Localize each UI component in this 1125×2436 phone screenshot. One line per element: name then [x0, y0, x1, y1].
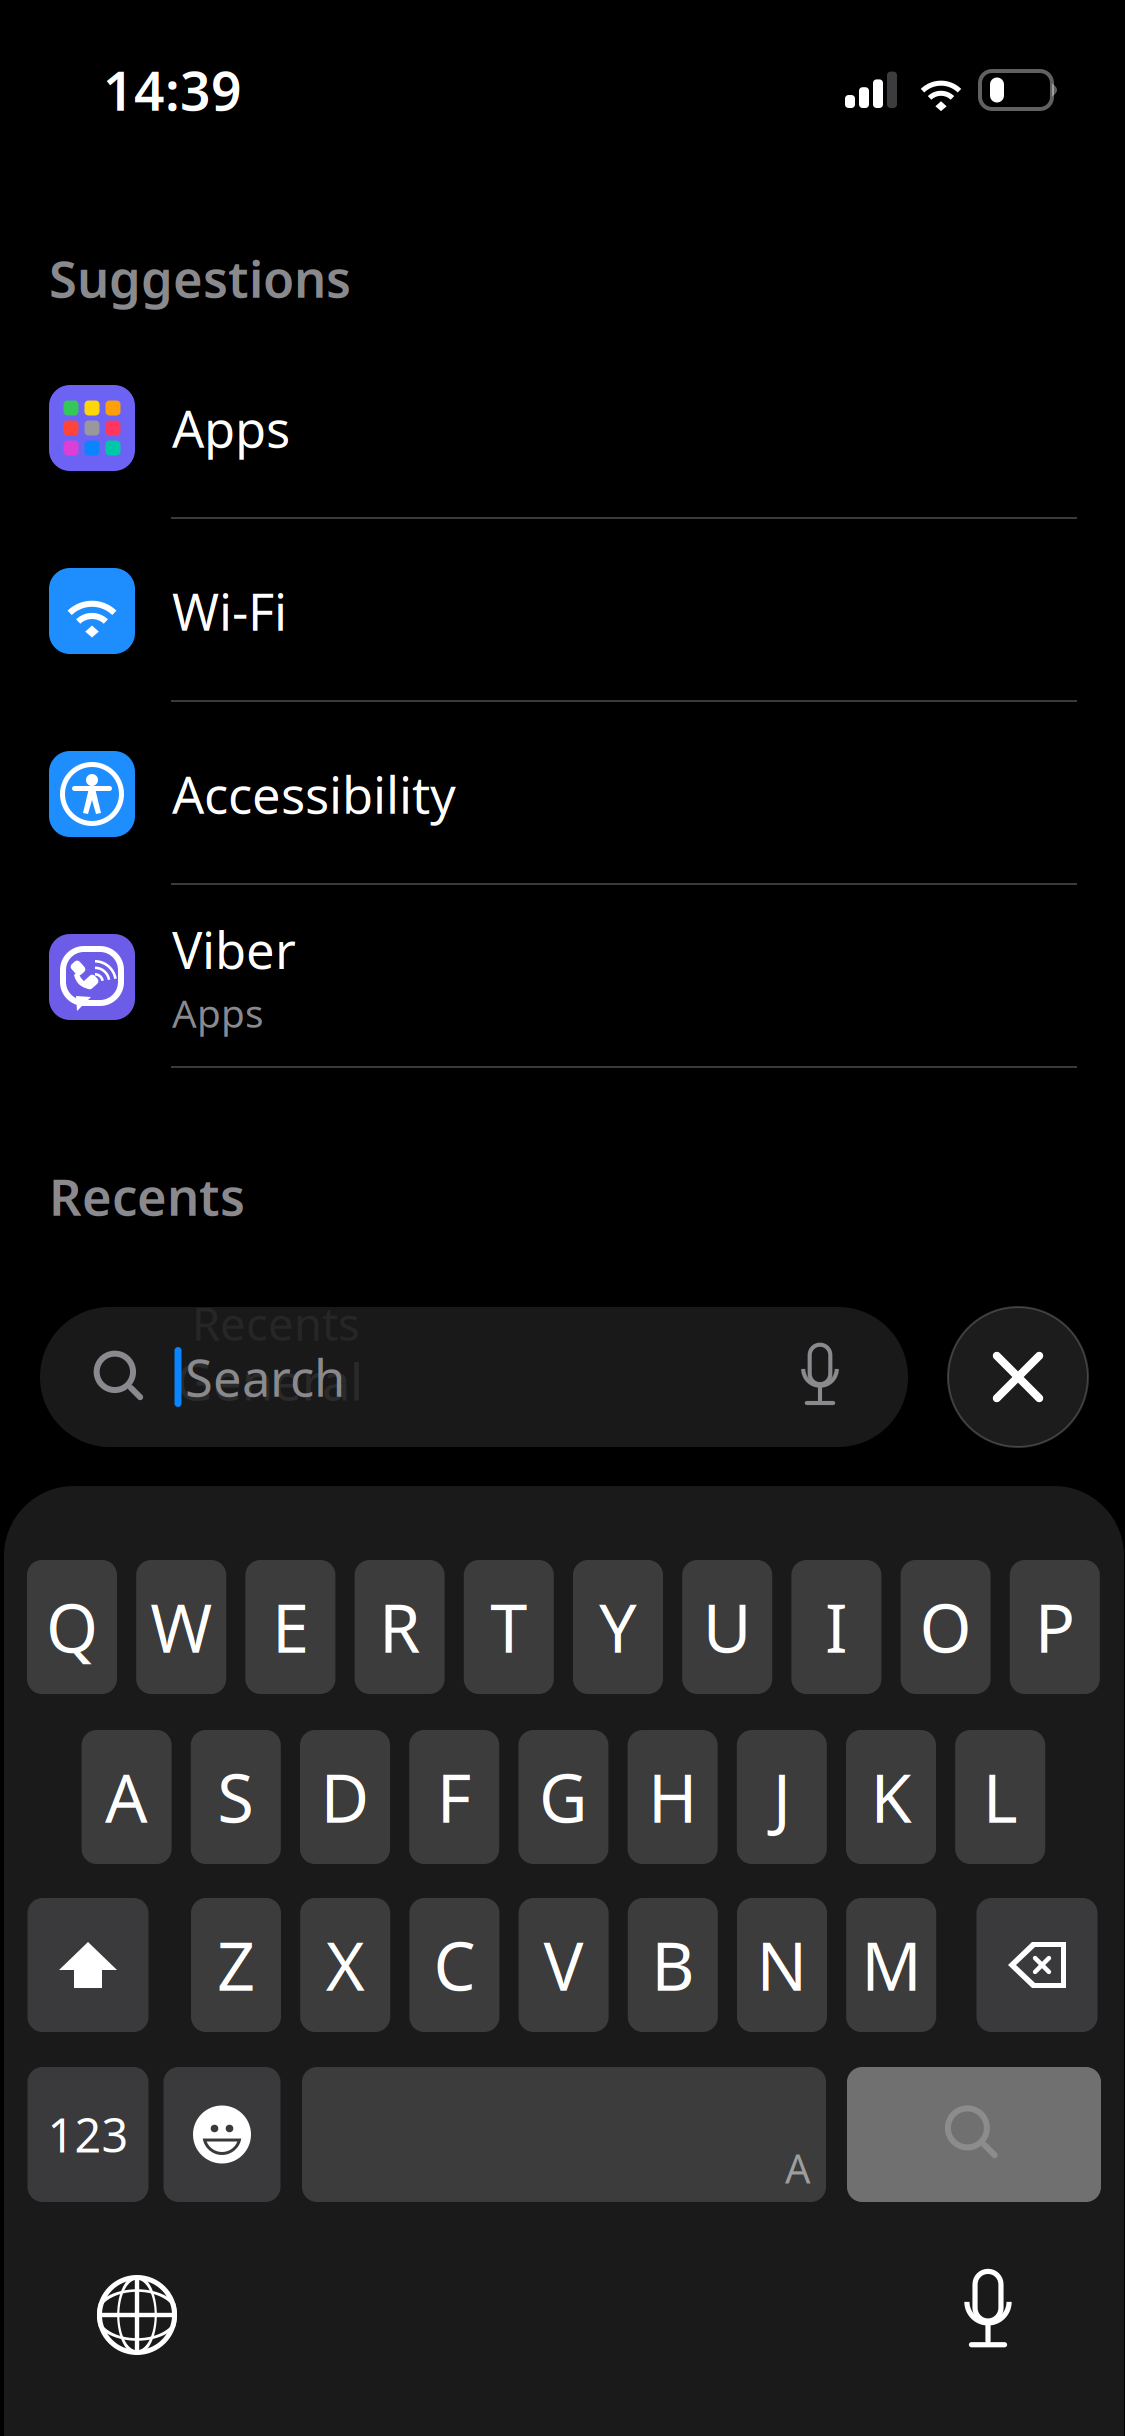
staticText: T	[490, 1583, 527, 1671]
staticText: X	[326, 1921, 365, 2009]
staticText: D	[320, 1753, 369, 1841]
button[interactable]: P	[1010, 1560, 1100, 1694]
button[interactable]: Y	[573, 1560, 663, 1694]
staticText: I	[825, 1583, 848, 1671]
button[interactable]: Apps	[0, 338, 1125, 518]
button[interactable]: E	[245, 1560, 335, 1694]
button[interactable]: Search	[847, 2067, 1101, 2202]
staticText: Suggestions	[49, 244, 351, 312]
staticText: A	[105, 1753, 148, 1841]
staticText: R	[379, 1583, 420, 1671]
button[interactable]: O	[901, 1560, 991, 1694]
button[interactable]: G	[518, 1730, 608, 1864]
button[interactable]: K	[846, 1730, 936, 1864]
staticText: V	[544, 1921, 584, 2009]
staticText: B	[651, 1921, 694, 2009]
button[interactable]: Close	[948, 1307, 1088, 1447]
button[interactable]: Recents	[40, 1307, 908, 1447]
button[interactable]: J	[737, 1730, 827, 1864]
button[interactable]: Q	[27, 1560, 117, 1694]
staticText: C	[433, 1921, 475, 2009]
staticText: Apps	[172, 394, 290, 462]
button[interactable]: Wi-Fi	[0, 521, 1125, 701]
button[interactable]: B	[628, 1898, 718, 2032]
staticText: W	[150, 1583, 212, 1671]
button[interactable]: Viber	[0, 887, 1125, 1067]
button[interactable]: F	[409, 1730, 499, 1864]
staticText: S	[217, 1753, 254, 1841]
button[interactable]: L	[955, 1730, 1045, 1864]
button[interactable]: T	[464, 1560, 554, 1694]
button[interactable]: N	[737, 1898, 827, 2032]
staticText: Accessibility	[172, 760, 456, 828]
button[interactable]: Accessibility	[0, 704, 1125, 884]
button[interactable]: M	[846, 1898, 936, 2032]
staticText: K	[870, 1753, 911, 1841]
staticText: H	[648, 1753, 697, 1841]
button[interactable]: I	[791, 1560, 881, 1694]
button[interactable]: Z	[191, 1898, 281, 2032]
staticText: A	[785, 2141, 811, 2194]
button[interactable]: Dictation	[959, 2268, 1017, 2356]
staticText: P	[1035, 1583, 1075, 1671]
button[interactable]: Next keyboard	[97, 2275, 177, 2355]
button[interactable]: V	[519, 1898, 609, 2032]
staticText: Recents	[49, 1162, 245, 1230]
staticText: M	[861, 1921, 921, 2009]
staticText: Z	[217, 1921, 255, 2009]
button[interactable]: H	[628, 1730, 718, 1864]
staticText: E	[272, 1583, 309, 1671]
button[interactable]: Emoji	[163, 2067, 280, 2202]
staticText: U	[703, 1583, 752, 1671]
button[interactable]: W	[136, 1560, 226, 1694]
staticText: 123	[47, 2103, 128, 2165]
button[interactable]: X	[300, 1898, 390, 2032]
button[interactable]: C	[409, 1898, 499, 2032]
staticText: O	[920, 1583, 972, 1671]
staticText: General	[176, 1347, 363, 1414]
staticText: Y	[599, 1583, 637, 1671]
button[interactable]: U	[682, 1560, 772, 1694]
button[interactable]: Space	[302, 2067, 826, 2202]
staticText: Search	[185, 1343, 345, 1411]
staticText: Apps	[172, 987, 264, 1038]
staticText: 14:39	[103, 55, 242, 125]
staticText: J	[773, 1753, 791, 1841]
staticText: N	[756, 1921, 807, 2009]
staticText: Q	[46, 1583, 98, 1671]
staticText: Viber	[172, 916, 296, 983]
button[interactable]: S	[191, 1730, 281, 1864]
button[interactable]: R	[355, 1560, 445, 1694]
button[interactable]: Shift	[27, 1898, 148, 2032]
staticText: F	[437, 1753, 472, 1841]
staticText: G	[539, 1753, 588, 1841]
button[interactable]: D	[300, 1730, 390, 1864]
button[interactable]: 123	[27, 2067, 148, 2202]
staticText: L	[983, 1753, 1018, 1841]
button[interactable]: A	[82, 1730, 172, 1864]
staticText: Recents	[192, 1293, 360, 1353]
staticText: Wi-Fi	[172, 577, 287, 645]
button[interactable]: Delete	[976, 1898, 1097, 2032]
